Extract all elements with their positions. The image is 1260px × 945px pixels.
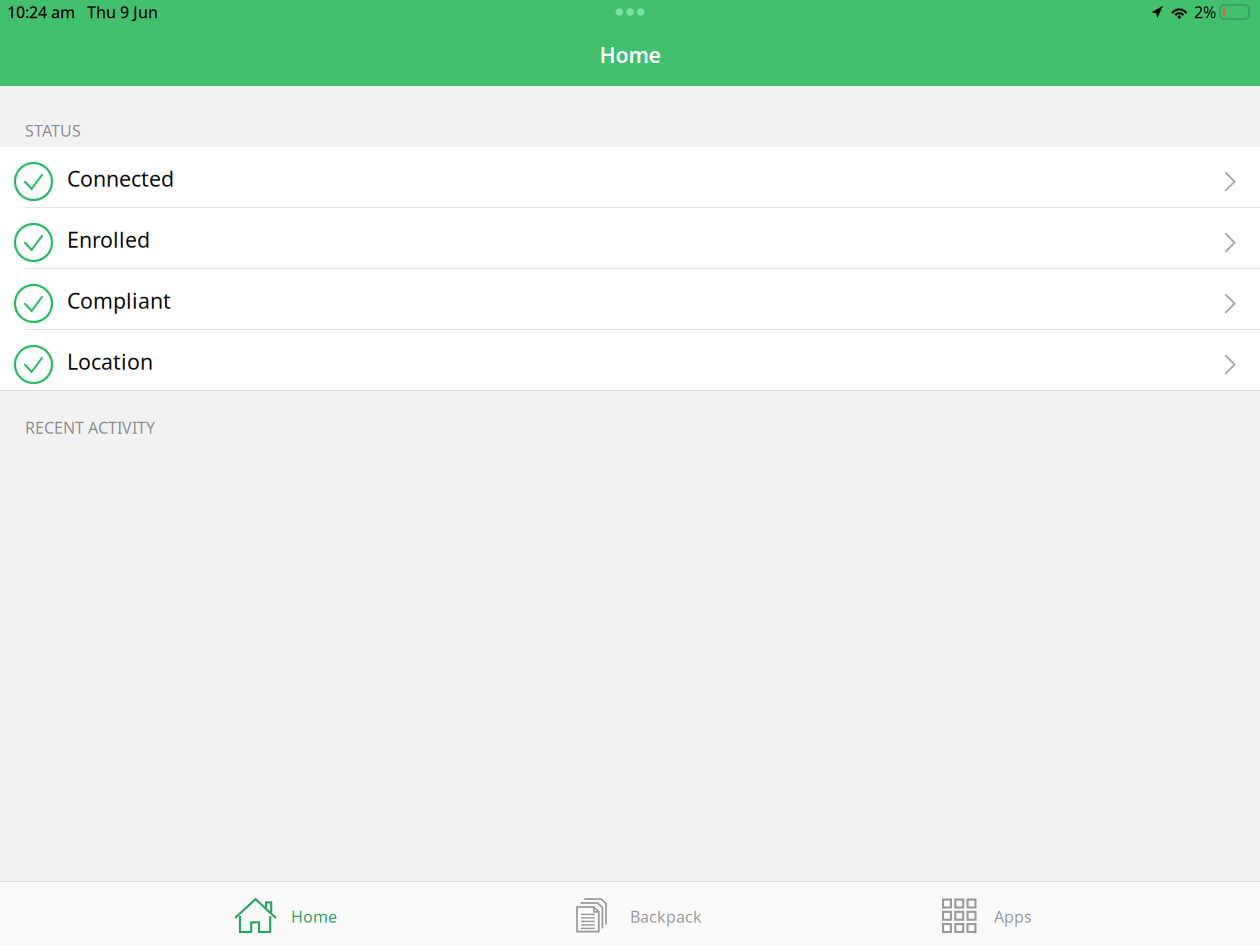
button[interactable]: Home (234, 882, 337, 945)
staticText: Apps (994, 906, 1032, 927)
staticText: Backpack (630, 906, 702, 927)
button[interactable]: Connected (25, 154, 1260, 199)
staticText: RECENT ACTIVITY (25, 417, 155, 438)
staticText: STATUS (25, 120, 81, 141)
staticText: Location (67, 347, 153, 376)
staticText: Home (599, 41, 660, 69)
button[interactable]: Compliant (25, 276, 1260, 321)
staticText: 10:24 am (7, 1, 75, 23)
button[interactable]: Location (25, 337, 1260, 382)
button[interactable]: Enrolled (25, 215, 1260, 260)
button[interactable]: Backpack (576, 882, 702, 945)
staticText: Enrolled (67, 225, 150, 254)
staticText: Compliant (67, 286, 171, 315)
button[interactable]: Apps (942, 882, 1032, 945)
staticText: Thu 9 Jun (87, 1, 158, 23)
staticText: 2% (1194, 1, 1216, 23)
staticText: Home (291, 906, 337, 927)
staticText: Connected (67, 164, 174, 193)
